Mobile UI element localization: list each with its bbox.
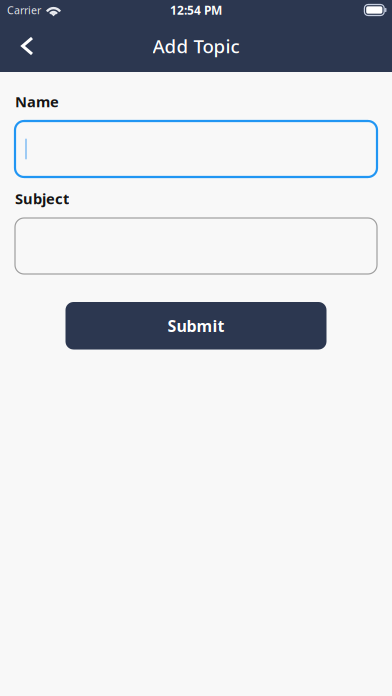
button[interactable]: Name text field <box>15 121 377 177</box>
button[interactable]: Subject text field <box>15 218 377 274</box>
staticText: Carrier <box>7 3 41 17</box>
button[interactable]: Submit <box>65 302 326 349</box>
staticText: Submit <box>167 315 224 336</box>
button[interactable]: Back <box>0 23 58 69</box>
staticText: Name <box>15 92 59 111</box>
staticText: 12:54 PM <box>170 2 222 18</box>
staticText: Subject <box>15 189 69 208</box>
staticText: Add Topic <box>152 34 239 58</box>
